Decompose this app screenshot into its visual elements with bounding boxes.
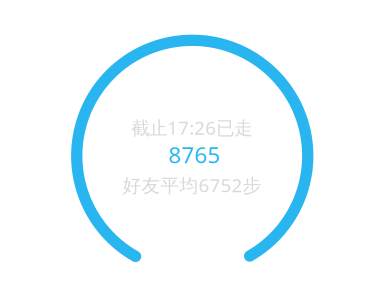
staticText: 好友平均6752步 xyxy=(122,172,261,198)
staticText: 截止17:26已走 xyxy=(131,115,252,140)
staticText: 8765 xyxy=(168,139,220,170)
